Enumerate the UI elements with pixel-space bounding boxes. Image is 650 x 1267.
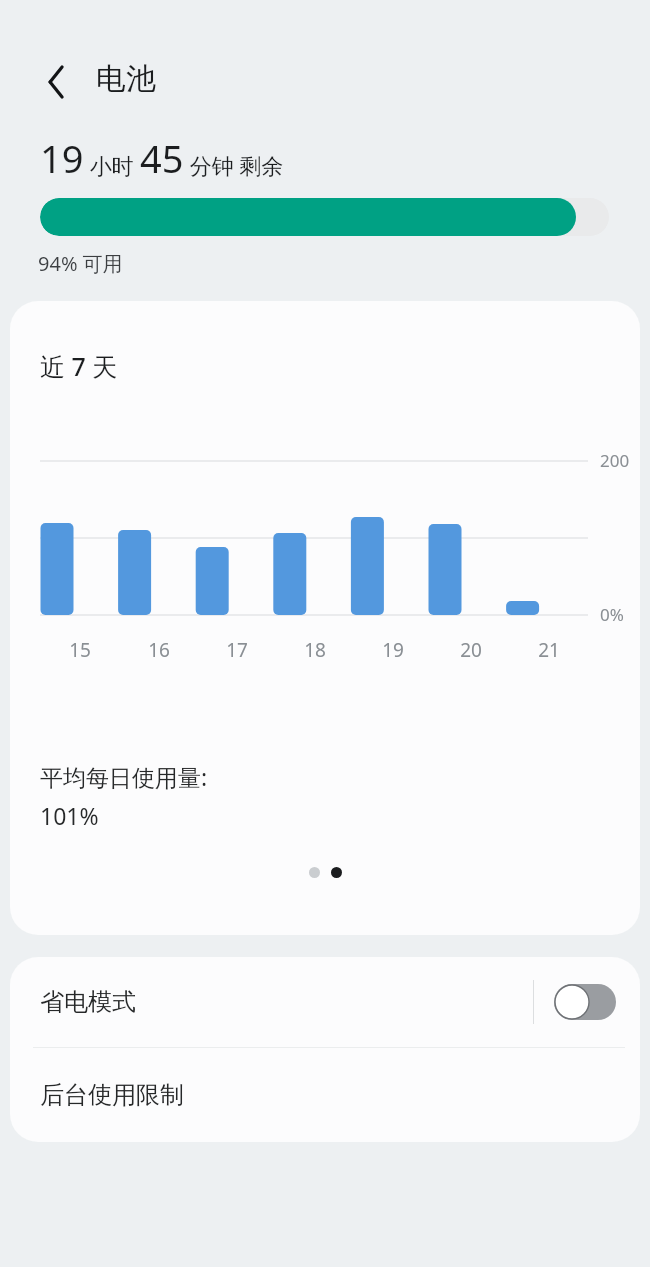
- staticText: 0%: [600, 603, 624, 626]
- staticText: 17: [226, 637, 248, 663]
- staticText: 21: [538, 637, 560, 663]
- staticText: 16: [148, 637, 170, 663]
- staticText: 20: [460, 637, 482, 663]
- staticText: 19: [40, 132, 84, 184]
- button[interactable]: 后台使用限制: [10, 1048, 640, 1142]
- staticText: 后台使用限制: [40, 1080, 184, 1110]
- staticText: 101%: [40, 800, 99, 831]
- staticText: 平均每日使用量:: [40, 761, 208, 792]
- staticText: 电池: [96, 60, 156, 98]
- button[interactable]: Power saving toggle: [554, 984, 616, 1020]
- staticText: 分钟 剩余: [184, 150, 284, 180]
- staticText: 15: [69, 637, 91, 663]
- staticText: 近 7 天: [40, 349, 118, 383]
- staticText: 省电模式: [40, 987, 533, 1017]
- staticText: 小时: [84, 150, 140, 180]
- button[interactable]: Page 2: [331, 867, 342, 878]
- staticText: 18: [304, 637, 326, 663]
- button[interactable]: 省电模式: [10, 957, 640, 1047]
- button[interactable]: Page 1: [309, 867, 320, 878]
- staticText: 19: [382, 637, 404, 663]
- staticText: 200: [600, 449, 630, 472]
- staticText: 45: [140, 132, 184, 184]
- staticText: 94% 可用: [38, 250, 123, 277]
- button[interactable]: Back: [28, 58, 76, 106]
